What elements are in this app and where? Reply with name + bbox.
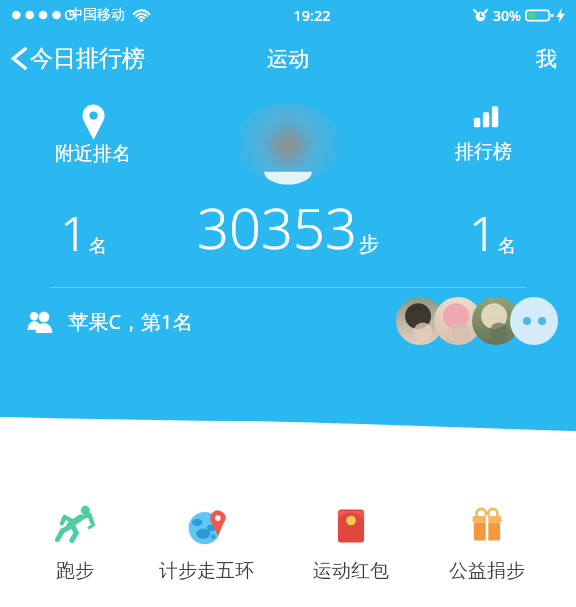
staticText: 附近排名 [55,142,131,166]
staticText: 运动 [267,46,309,72]
button[interactable]: 公益捐步 [441,497,533,587]
other: Leaderboard [468,103,499,135]
button[interactable]: 今日排行榜 [0,37,157,80]
staticText: 苹果C，第1名 [68,308,193,335]
staticText: 名 [89,235,107,258]
staticText: 中国移动 [69,6,125,24]
button[interactable]: Friend avatar [472,297,520,345]
button[interactable]: 计步走五环 [151,497,262,587]
button[interactable]: Leaderboard [390,103,576,164]
staticText: 今日排行榜 [30,44,145,73]
staticText: 1 [469,200,497,265]
button[interactable]: 苹果C，第1名 [0,288,576,354]
button[interactable]: 我 [517,37,576,81]
staticText: 我 [536,46,557,72]
button[interactable]: 运动红包 [305,497,397,587]
staticText: 公益捐步 [449,559,525,583]
button[interactable]: Nearby ranking [0,103,186,166]
button[interactable]: More friends [510,297,558,345]
staticText: 30% [493,6,521,25]
staticText: 运动红包 [313,559,389,583]
staticText: 跑步 [56,559,94,583]
staticText: 排行榜 [455,140,512,164]
button[interactable]: Friend avatar [434,297,482,345]
staticText: 步 [359,232,379,257]
other: Nearby ranking [80,103,107,137]
staticText: 30353 [197,189,357,265]
staticText: 计步走五环 [159,559,254,583]
staticText: 1 [60,200,88,265]
staticText: 名 [498,235,516,258]
button[interactable]: Friend avatar [396,297,444,345]
staticText: 19:22 [293,5,331,25]
button[interactable]: 跑步 [43,497,107,587]
